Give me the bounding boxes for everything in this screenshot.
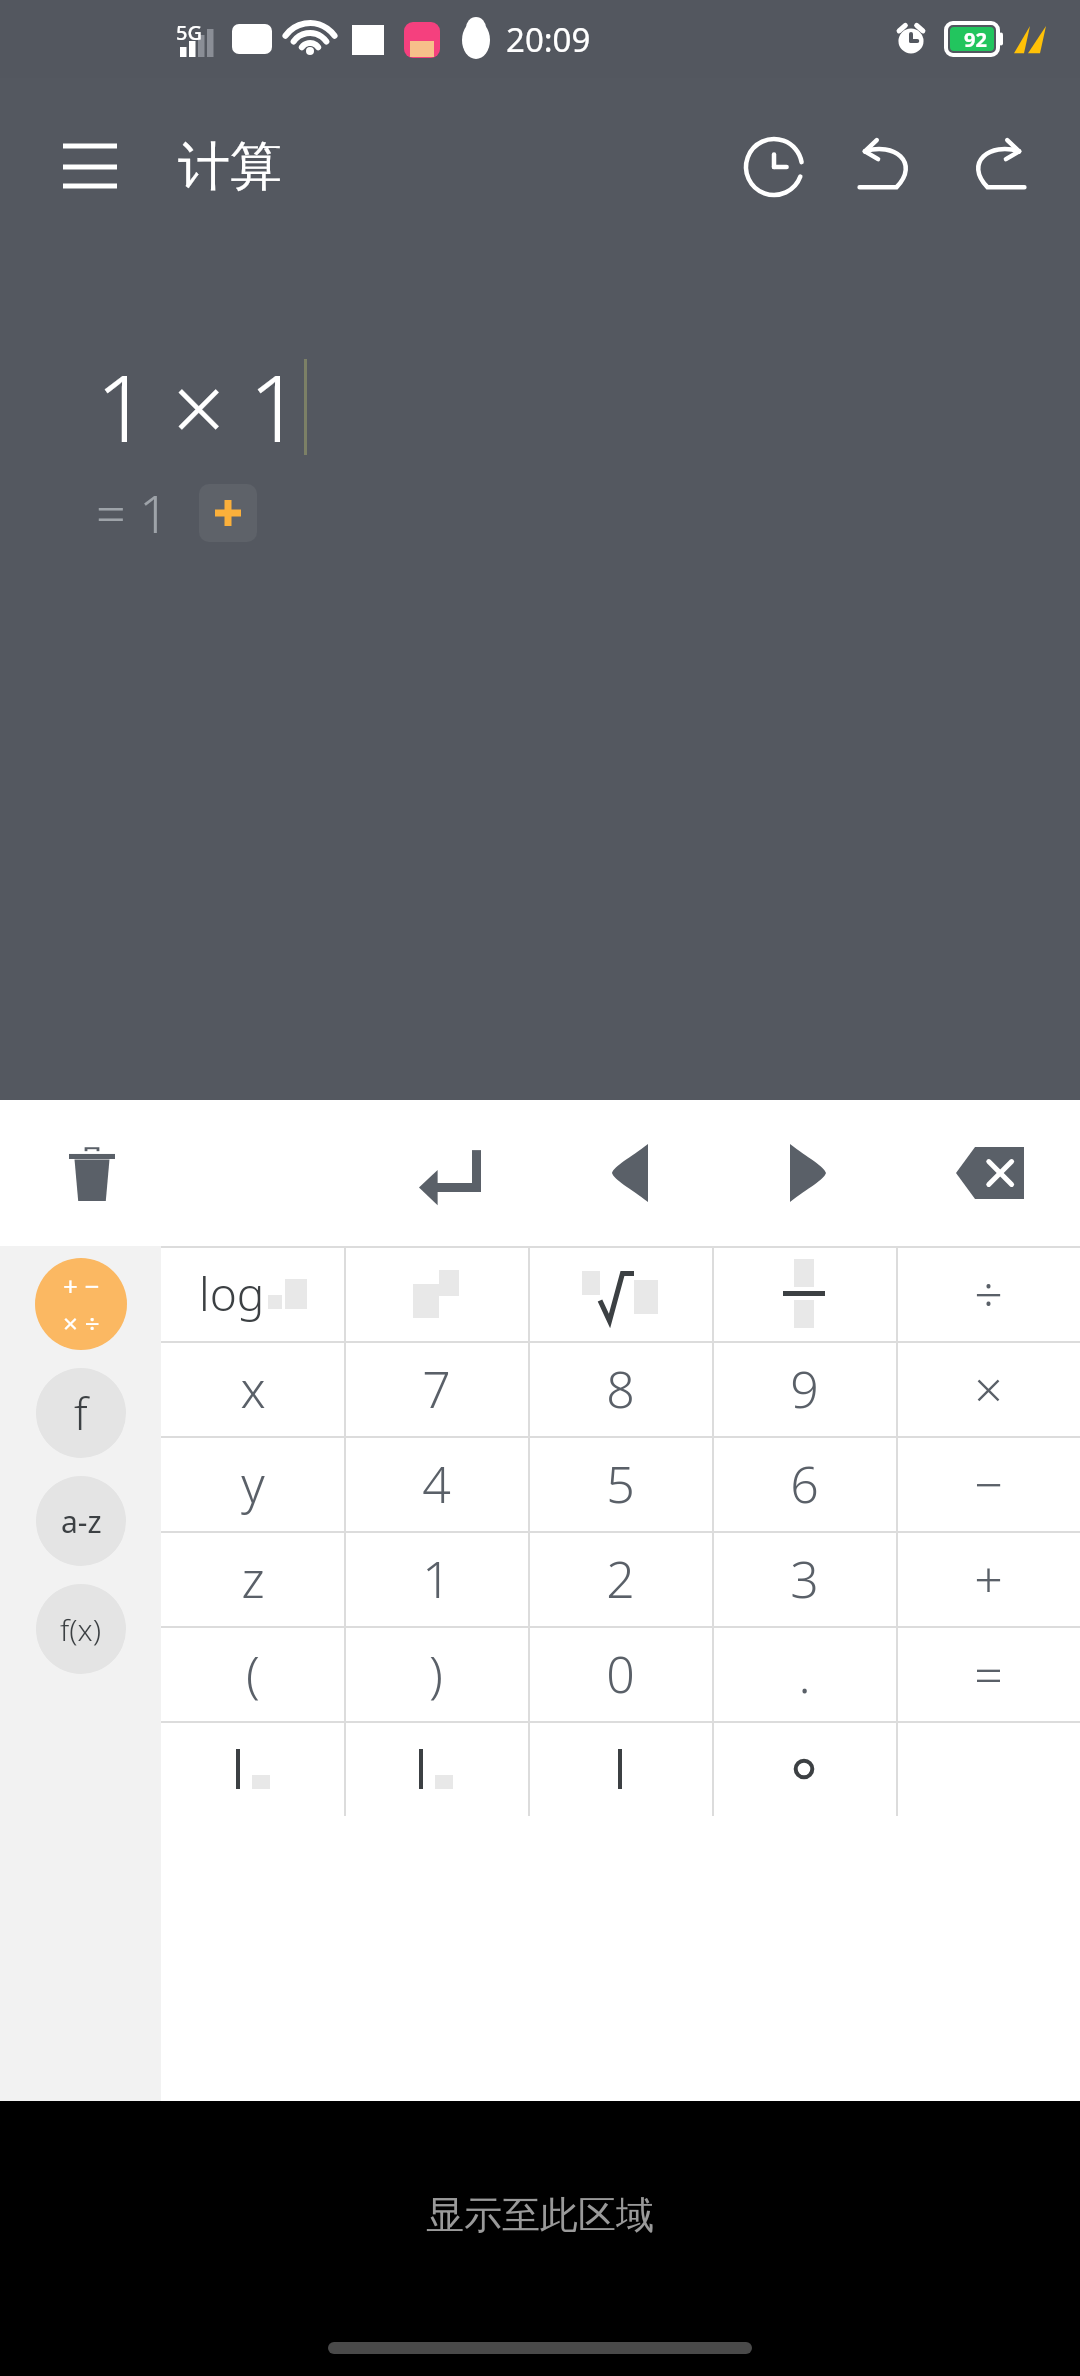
staticText: = bbox=[974, 1640, 1003, 1708]
staticText: + − bbox=[63, 1268, 100, 1303]
staticText: ) bbox=[429, 1640, 443, 1708]
button[interactable]: 4 bbox=[344, 1436, 528, 1531]
button[interactable]: 0 bbox=[528, 1626, 712, 1721]
staticText: 9 bbox=[790, 1355, 819, 1423]
staticText: log bbox=[199, 1262, 265, 1325]
button[interactable]: f bbox=[36, 1368, 126, 1458]
button[interactable]: 6 bbox=[712, 1436, 896, 1531]
staticText: x bbox=[240, 1355, 266, 1423]
staticText: 4 bbox=[422, 1450, 451, 1518]
staticText: 7 bbox=[422, 1355, 451, 1423]
staticText: 显示至此区域 bbox=[426, 2191, 654, 2239]
button[interactable]: Move left bbox=[576, 1119, 684, 1227]
button[interactable]: z bbox=[161, 1531, 344, 1626]
button[interactable]: Menu bbox=[42, 119, 138, 215]
button[interactable] bbox=[161, 1721, 344, 1816]
staticText: f(x) bbox=[60, 1609, 102, 1650]
button[interactable] bbox=[344, 1721, 528, 1816]
button[interactable]: Redo bbox=[942, 111, 1054, 223]
staticText: 20:09 bbox=[506, 17, 591, 62]
button[interactable]: 9 bbox=[712, 1341, 896, 1436]
button[interactable] bbox=[712, 1246, 896, 1341]
button[interactable]: f(x) bbox=[36, 1584, 126, 1674]
staticText: 计算 bbox=[178, 134, 282, 200]
staticText: z bbox=[241, 1545, 265, 1613]
staticText: − bbox=[974, 1450, 1003, 1518]
button[interactable]: Undo bbox=[830, 111, 942, 223]
staticText: = 1 bbox=[96, 477, 169, 548]
staticText: a-z bbox=[61, 1501, 102, 1542]
staticText: 92 bbox=[964, 26, 987, 53]
staticText: 8 bbox=[606, 1355, 635, 1423]
staticText: . bbox=[798, 1640, 811, 1708]
staticText: × bbox=[974, 1355, 1003, 1423]
button[interactable]: a-z bbox=[36, 1476, 126, 1566]
staticText: 1 × 1 bbox=[96, 344, 302, 469]
button[interactable]: − bbox=[896, 1436, 1080, 1531]
button[interactable]: + bbox=[896, 1531, 1080, 1626]
button[interactable] bbox=[528, 1246, 712, 1341]
button[interactable]: x bbox=[161, 1341, 344, 1436]
staticText: 5 bbox=[606, 1450, 635, 1518]
button[interactable] bbox=[712, 1721, 896, 1816]
staticText: 2 bbox=[606, 1545, 635, 1613]
button[interactable]: 7 bbox=[344, 1341, 528, 1436]
button[interactable] bbox=[344, 1246, 528, 1341]
button[interactable]: Add bbox=[199, 484, 257, 542]
button[interactable]: y bbox=[161, 1436, 344, 1531]
staticText: 3 bbox=[790, 1545, 819, 1613]
button[interactable] bbox=[528, 1721, 712, 1816]
button[interactable]: log bbox=[161, 1246, 344, 1341]
button[interactable]: Move right bbox=[754, 1119, 862, 1227]
button[interactable]: History bbox=[718, 111, 830, 223]
staticText: ÷ bbox=[974, 1260, 1003, 1328]
staticText: + bbox=[974, 1545, 1003, 1613]
button[interactable]: = bbox=[896, 1626, 1080, 1721]
staticText: f bbox=[74, 1383, 88, 1443]
staticText: 0 bbox=[606, 1640, 635, 1708]
staticText: 6 bbox=[790, 1450, 819, 1518]
button[interactable] bbox=[896, 1721, 1080, 1816]
button[interactable]: ( bbox=[161, 1626, 344, 1721]
button[interactable]: 8 bbox=[528, 1341, 712, 1436]
button[interactable]: . bbox=[712, 1626, 896, 1721]
button[interactable]: 5 bbox=[528, 1436, 712, 1531]
staticText: y bbox=[241, 1450, 265, 1518]
staticText: 1 bbox=[422, 1545, 451, 1613]
staticText: 5G bbox=[176, 19, 202, 46]
button[interactable]: ) bbox=[344, 1626, 528, 1721]
button[interactable]: ÷ bbox=[896, 1246, 1080, 1341]
button[interactable]: Backspace bbox=[936, 1119, 1044, 1227]
staticText: × ÷ bbox=[63, 1305, 100, 1340]
button[interactable]: 1 bbox=[344, 1531, 528, 1626]
button[interactable]: Enter bbox=[396, 1119, 504, 1227]
button[interactable]: 2 bbox=[528, 1531, 712, 1626]
button[interactable]: Clear bbox=[38, 1119, 146, 1227]
button[interactable]: 3 bbox=[712, 1531, 896, 1626]
button[interactable]: + − bbox=[35, 1258, 127, 1350]
staticText: ( bbox=[246, 1640, 260, 1708]
button[interactable]: × bbox=[896, 1341, 1080, 1436]
